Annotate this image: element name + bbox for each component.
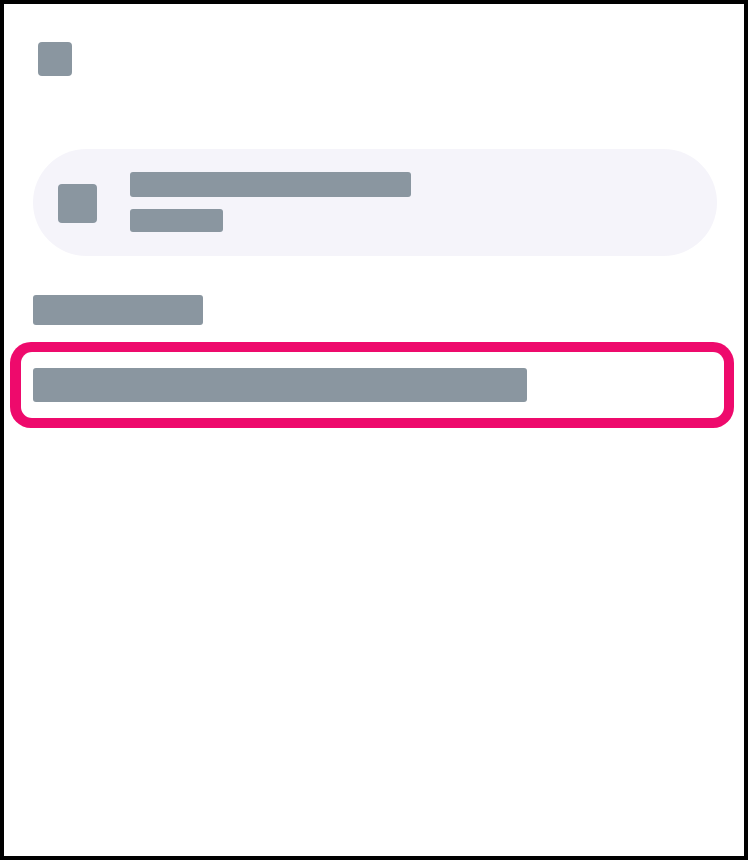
button[interactable]	[10, 342, 734, 428]
button[interactable]	[33, 149, 717, 256]
button[interactable]: Navigate up	[38, 42, 72, 76]
